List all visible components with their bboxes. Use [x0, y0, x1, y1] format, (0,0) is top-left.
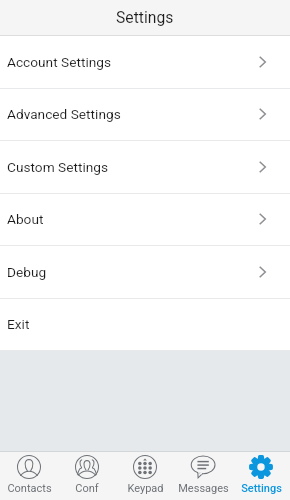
staticText: Advanced Settings — [7, 106, 121, 122]
staticText: About — [7, 211, 44, 227]
staticText: Debug — [7, 264, 47, 280]
button[interactable]: Messages — [174, 452, 232, 495]
button[interactable]: Custom Settings — [0, 141, 290, 193]
button[interactable]: Keypad — [116, 452, 174, 495]
button[interactable]: Debug — [0, 246, 290, 298]
staticText: Account Settings — [7, 54, 112, 70]
staticText: Contacts — [7, 482, 52, 495]
staticText: Conf — [75, 482, 99, 495]
staticText: Custom Settings — [7, 159, 109, 175]
button[interactable]: Contacts — [0, 452, 58, 495]
button[interactable]: Exit — [0, 298, 290, 350]
button[interactable]: Account Settings — [0, 36, 290, 88]
button[interactable]: Settings — [232, 452, 290, 495]
button[interactable]: About — [0, 193, 290, 245]
button[interactable]: Advanced Settings — [0, 88, 290, 140]
staticText: Settings — [116, 8, 174, 26]
staticText: Keypad — [127, 482, 164, 495]
staticText: Messages — [178, 482, 229, 495]
staticText: Exit — [7, 316, 30, 332]
button[interactable]: Conf — [58, 452, 116, 495]
staticText: Settings — [241, 482, 282, 495]
